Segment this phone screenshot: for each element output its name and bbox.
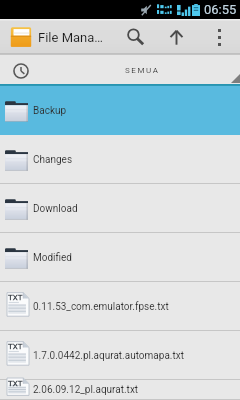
staticText: 1.7.0.0442.pl.aqurat.automapa.txt [33,350,184,362]
staticText: Modified [33,252,72,264]
button[interactable]: Go up [155,19,198,55]
staticText: Backup [33,105,67,117]
button[interactable]: SEMUA [42,56,240,85]
staticText: 0.11.53_com.emulator.fpse.txt [33,301,169,313]
staticText: Changes [33,154,73,166]
staticText: TXT [8,379,23,388]
button[interactable]: TXT [0,282,240,331]
button[interactable]: Recent [0,56,42,85]
staticText: Download [33,203,78,215]
button[interactable]: TXT [0,331,240,380]
button[interactable]: Changes [0,135,240,184]
staticText: SEMUA [125,66,160,75]
button[interactable]: More options [198,19,240,55]
staticText: TXT [8,293,23,302]
staticText: 2.06.09.12_pl.aqurat.txt [33,384,139,396]
button[interactable]: TXT [0,380,240,400]
staticText: File Mana… [38,30,103,45]
staticText: 06:55 [204,2,237,17]
staticText: TXT [8,342,23,351]
button[interactable]: Modified [0,233,240,282]
button[interactable]: Search [115,19,155,55]
button[interactable]: Download [0,184,240,233]
button[interactable]: Backup [0,86,240,135]
